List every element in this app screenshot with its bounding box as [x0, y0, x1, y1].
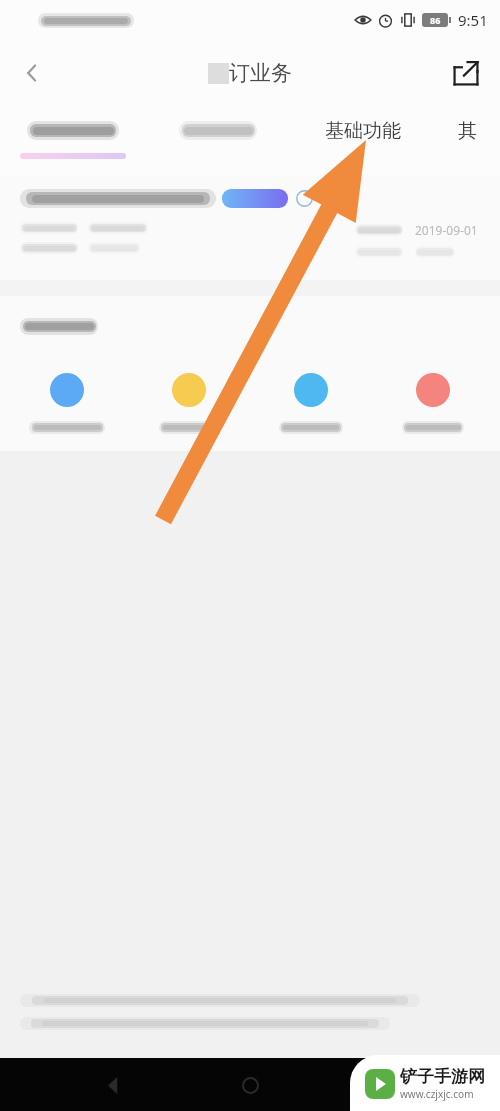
button[interactable] — [372, 356, 494, 451]
staticText: 铲子手游网 — [400, 1066, 485, 1087]
button[interactable]: 基础功能 — [290, 105, 435, 175]
button[interactable]: 2019-09-01 — [0, 175, 500, 280]
button[interactable]: 其 — [435, 105, 500, 175]
button[interactable]: Recents — [363, 1061, 411, 1109]
staticText: 86 — [430, 14, 441, 26]
staticText: 其 — [458, 119, 477, 143]
staticText: 基础功能 — [325, 119, 401, 143]
button[interactable]: Share — [444, 51, 488, 95]
button[interactable]: Back — [10, 51, 54, 95]
button[interactable] — [6, 356, 128, 451]
button[interactable] — [128, 356, 250, 451]
button[interactable]: Home — [226, 1061, 274, 1109]
button[interactable]: Back — [89, 1061, 137, 1109]
staticText: www.czjxjc.com — [400, 1087, 474, 1101]
button[interactable] — [250, 356, 372, 451]
staticText: 订业务 — [229, 60, 292, 86]
button[interactable] — [145, 105, 290, 175]
staticText: 9:51 — [458, 10, 488, 30]
button[interactable] — [0, 105, 145, 175]
staticText: 2019-09-01 — [415, 222, 478, 238]
